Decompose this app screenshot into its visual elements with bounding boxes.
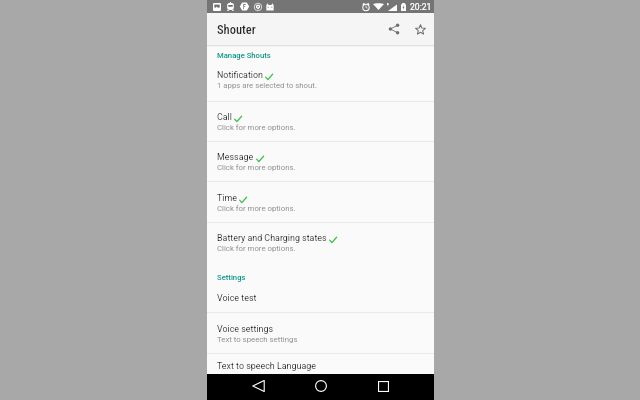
staticText: Call (217, 112, 232, 122)
staticText: Battery and Charging states (217, 233, 327, 243)
staticText: Notification (217, 70, 263, 80)
button[interactable]: Call (207, 102, 434, 141)
staticText: Shouter (217, 22, 256, 37)
staticText: Click for more options. (217, 163, 296, 172)
button[interactable]: Time (207, 182, 434, 222)
button[interactable]: Voice settings (207, 313, 434, 353)
staticText: Voice test (217, 293, 257, 303)
button[interactable]: Notification (207, 58, 434, 101)
staticText: 1 apps are selected to shout. (217, 81, 317, 90)
staticText: Message (217, 152, 254, 162)
staticText: Voice settings (217, 324, 274, 334)
staticText: Manage Shouts (217, 51, 271, 60)
staticText: Time (217, 193, 237, 203)
staticText: Text to speech Language (217, 361, 316, 371)
button[interactable]: Home (309, 375, 333, 399)
button[interactable]: Favorite (407, 16, 433, 42)
button[interactable]: Text to speech Language (207, 354, 434, 377)
staticText: Settings (217, 273, 246, 282)
staticText: 20:21 (410, 2, 432, 12)
button[interactable]: Battery and Charging states (207, 223, 434, 262)
button[interactable]: Share (381, 16, 407, 42)
button[interactable]: Recents (371, 375, 395, 399)
button[interactable]: Message (207, 142, 434, 181)
button[interactable]: Voice test (207, 283, 434, 312)
staticText: Text to speech settings (217, 335, 298, 344)
staticText: Click for more options. (217, 204, 296, 213)
staticText: Click for more options. (217, 244, 296, 253)
staticText: Click for more options. (217, 123, 296, 132)
button[interactable]: Back (246, 375, 270, 399)
